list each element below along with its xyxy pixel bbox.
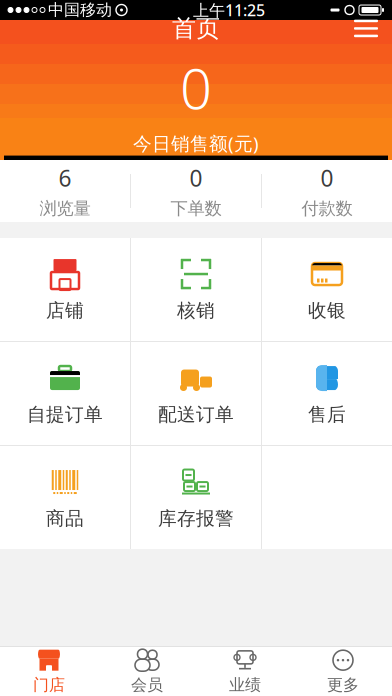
button[interactable]: 售后 [262,342,392,445]
staticText: 库存报警 [158,507,234,530]
staticText: 付款数 [301,198,352,219]
staticText: 中国移动 [48,0,112,20]
button[interactable]: 会员 [98,647,196,696]
staticText: 自提订单 [27,403,103,426]
button[interactable]: 业绩 [196,647,294,696]
staticText: 更多 [327,675,359,695]
staticText: 首页 [172,14,220,43]
staticText: 店铺 [46,299,84,322]
staticText: 售后 [308,403,346,426]
button[interactable]: 核销 [131,238,261,341]
staticText: 门店 [33,675,65,695]
button[interactable]: 0 [131,160,261,222]
button[interactable]: Menu [344,6,388,50]
staticText: 商品 [46,507,84,530]
button[interactable]: 收银 [262,238,392,341]
button[interactable]: 6 [0,160,130,222]
button[interactable]: 商品 [0,446,130,549]
staticText: 0 [180,50,212,125]
staticText: 0 [189,163,202,193]
staticText: 配送订单 [158,403,234,426]
staticText: 上午11:25 [193,0,265,21]
button[interactable]: 更多 [294,647,392,696]
staticText: 0 [320,163,333,193]
staticText: 浏览量 [39,198,90,219]
button[interactable]: 0 [262,160,392,222]
button[interactable]: 店铺 [0,238,130,341]
button[interactable]: 门店 [0,647,98,696]
staticText: 下单数 [170,198,221,219]
button[interactable]: 库存报警 [131,446,261,549]
staticText: 今日销售额(元) [133,131,259,156]
staticText: 会员 [131,675,163,695]
button[interactable]: 配送订单 [131,342,261,445]
button[interactable]: 自提订单 [0,342,130,445]
staticText: 业绩 [229,675,261,695]
staticText: 6 [58,163,71,193]
staticText: 收银 [308,299,346,322]
staticText: 核销 [177,299,215,322]
